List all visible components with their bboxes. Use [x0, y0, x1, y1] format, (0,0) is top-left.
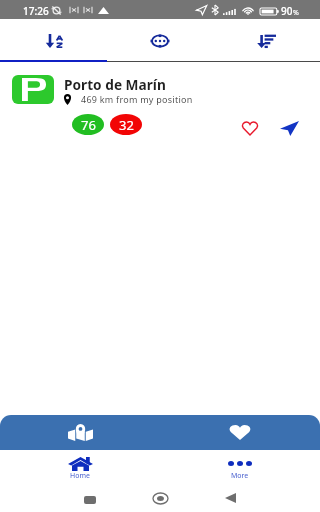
button[interactable]: Map [0, 415, 160, 450]
button[interactable]: My location [106, 21, 213, 61]
button[interactable]: More [160, 450, 320, 481]
staticText: 90 [281, 4, 293, 18]
button[interactable]: Recent apps [78, 488, 102, 512]
other: Sort alphabetically [47, 34, 63, 48]
staticText: 469 km from my position [81, 93, 193, 105]
button[interactable]: Navigate [273, 112, 305, 144]
staticText: 17:26 [23, 4, 49, 18]
button[interactable]: Back [218, 486, 242, 510]
staticText: 32 [119, 116, 134, 134]
button[interactable]: Favourites [160, 415, 320, 450]
other: Sort descending [257, 35, 276, 48]
staticText: % [293, 8, 299, 18]
staticText: Home [70, 471, 90, 481]
button[interactable]: Home [0, 450, 160, 481]
staticText: 76 [81, 116, 96, 134]
button[interactable]: Porto de Marín [0, 62, 320, 142]
staticText: More [231, 471, 249, 481]
button[interactable]: Favourite [234, 112, 266, 144]
button[interactable]: Sort descending [213, 21, 320, 61]
staticText: Porto de Marín [64, 75, 166, 94]
button[interactable]: Sort alphabetically [0, 21, 106, 61]
button[interactable]: Home [148, 486, 172, 510]
other: My location [150, 34, 170, 48]
